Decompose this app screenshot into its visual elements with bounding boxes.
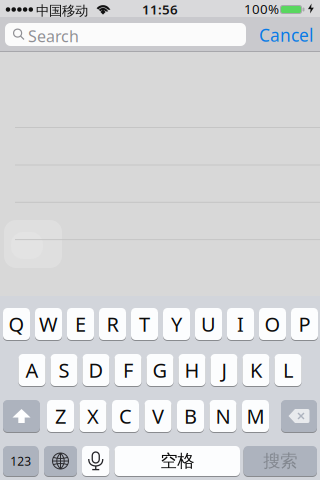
button[interactable]: G xyxy=(146,354,173,387)
staticText: D xyxy=(88,357,103,383)
button[interactable]: S xyxy=(50,354,77,387)
button[interactable]: P xyxy=(291,308,318,341)
button[interactable]: 123 xyxy=(3,446,38,477)
button[interactable]: W xyxy=(35,308,62,341)
staticText: X xyxy=(87,403,99,429)
button[interactable]: L xyxy=(274,354,301,387)
button[interactable]: U xyxy=(195,308,222,341)
staticText: J xyxy=(221,357,226,383)
staticText: K xyxy=(250,357,262,383)
button[interactable]: J xyxy=(210,354,237,387)
button[interactable]: Y xyxy=(163,308,190,341)
button[interactable]: M xyxy=(242,400,269,433)
button[interactable]: Q xyxy=(3,308,30,341)
button[interactable]: K xyxy=(242,354,269,387)
staticText: 100% xyxy=(244,0,279,18)
staticText: 123 xyxy=(10,453,31,469)
button[interactable]: Z xyxy=(47,400,74,433)
staticText: 11:56 xyxy=(142,0,178,18)
staticText: P xyxy=(298,311,310,337)
button[interactable]: V xyxy=(144,400,171,433)
button[interactable]: E xyxy=(67,308,94,341)
staticText: H xyxy=(184,357,199,383)
button[interactable]: O xyxy=(259,308,286,341)
staticText: M xyxy=(246,403,264,429)
staticText: L xyxy=(283,357,293,383)
button[interactable]: 搜索 xyxy=(243,446,317,477)
button[interactable]: F xyxy=(114,354,141,387)
staticText: Search xyxy=(28,25,79,47)
staticText: A xyxy=(25,357,38,383)
button[interactable]: Dictation xyxy=(82,446,109,477)
button[interactable]: R xyxy=(99,308,126,341)
staticText: E xyxy=(75,311,86,337)
staticText: W xyxy=(39,311,58,337)
button[interactable]: 空格 xyxy=(114,446,240,477)
button[interactable]: N xyxy=(209,400,236,433)
staticText: Q xyxy=(8,311,24,337)
staticText: T xyxy=(139,311,150,337)
staticText: G xyxy=(152,357,167,383)
staticText: 中国移动 xyxy=(36,2,88,19)
button[interactable]: B xyxy=(177,400,204,433)
staticText: S xyxy=(58,357,69,383)
button[interactable]: Delete xyxy=(281,400,317,433)
button[interactable]: I xyxy=(227,308,254,341)
button[interactable]: Cancel xyxy=(259,23,313,46)
staticText: F xyxy=(123,357,133,383)
button[interactable]: X xyxy=(79,400,106,433)
staticText: 空格 xyxy=(160,450,194,472)
staticText: I xyxy=(237,311,244,337)
staticText: 搜索 xyxy=(263,450,297,472)
staticText: V xyxy=(152,403,164,429)
staticText: C xyxy=(119,403,132,429)
staticText: Z xyxy=(55,403,66,429)
staticText: Cancel xyxy=(259,23,313,46)
button[interactable]: T xyxy=(131,308,158,341)
button[interactable]: D xyxy=(82,354,109,387)
staticText: N xyxy=(215,403,230,429)
staticText: B xyxy=(184,403,197,429)
button[interactable]: H xyxy=(178,354,205,387)
button[interactable]: Next keyboard xyxy=(44,446,77,477)
staticText: Y xyxy=(171,311,182,337)
staticText: U xyxy=(201,311,216,337)
staticText: R xyxy=(106,311,118,337)
staticText: O xyxy=(264,311,280,337)
button[interactable]: A xyxy=(18,354,45,387)
button[interactable]: Search xyxy=(5,23,246,46)
button[interactable]: C xyxy=(112,400,139,433)
button[interactable]: Shift xyxy=(3,400,40,433)
